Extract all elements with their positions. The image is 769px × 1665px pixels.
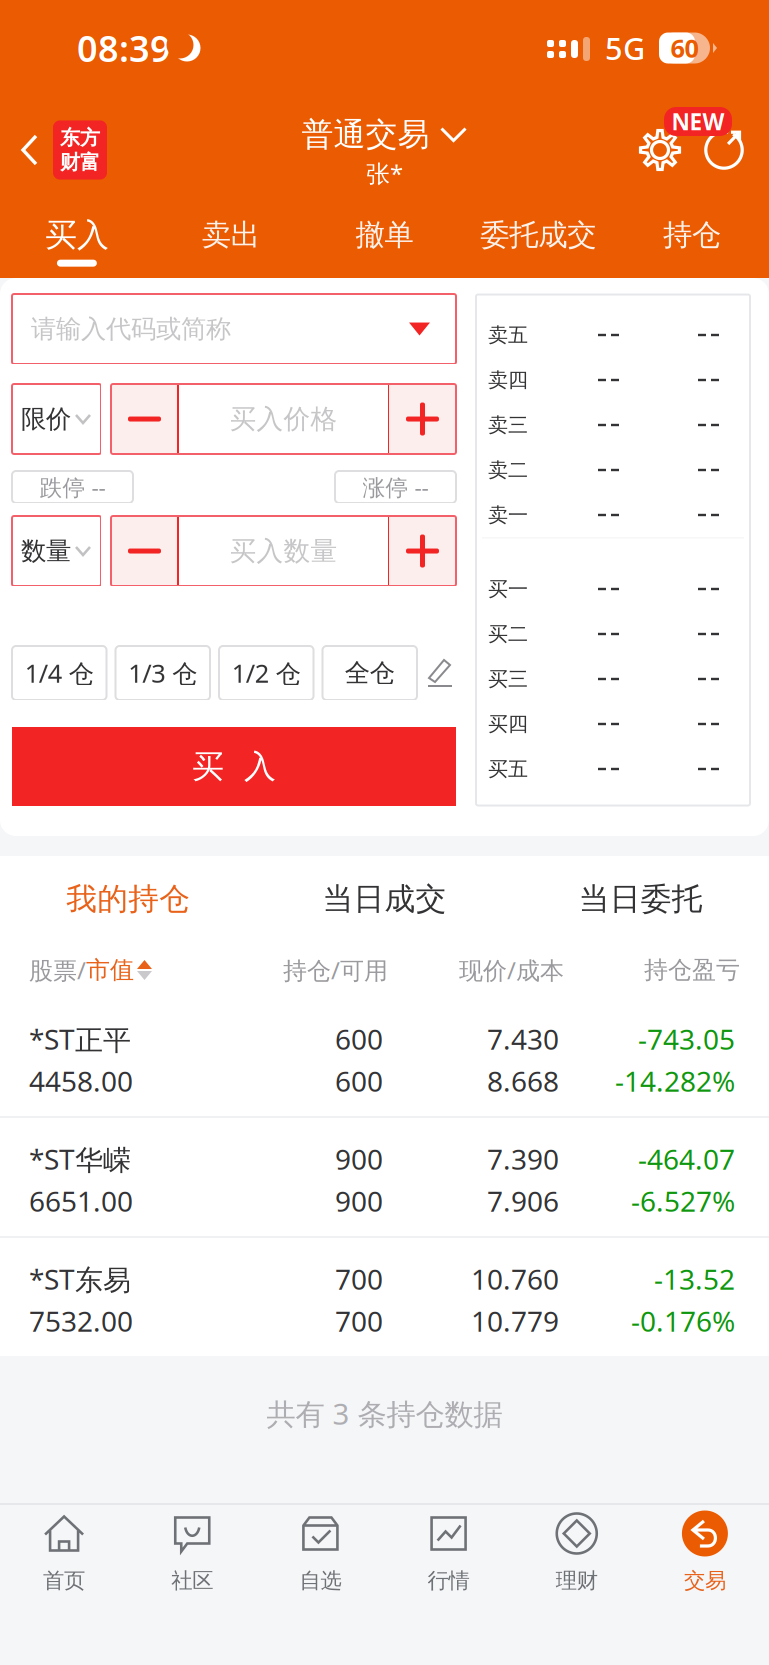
staticText: 股票/ bbox=[29, 954, 86, 986]
staticText: 交易 bbox=[684, 1567, 726, 1594]
button[interactable]: Settings bbox=[638, 128, 682, 172]
staticText: 600 bbox=[335, 1020, 383, 1058]
staticText: 普通交易 bbox=[301, 115, 429, 154]
staticText: 卖五 bbox=[488, 323, 528, 347]
staticText: 08:39 bbox=[77, 24, 171, 72]
button[interactable]: 1/3 仓 bbox=[115, 646, 210, 700]
button[interactable]: 全仓 bbox=[322, 646, 417, 700]
button[interactable]: 交易 bbox=[641, 1500, 769, 1627]
staticText: 700 bbox=[335, 1260, 383, 1298]
button[interactable]: 限价 bbox=[12, 384, 101, 454]
staticText: 900 bbox=[335, 1140, 383, 1178]
staticText: 买一 bbox=[488, 577, 528, 601]
button[interactable]: 跌停 -- bbox=[12, 471, 133, 503]
button[interactable]: Back bbox=[0, 96, 107, 204]
staticText: *ST华嵘 bbox=[29, 1140, 131, 1178]
staticText: 限价 bbox=[21, 403, 71, 434]
staticText: 请输入代码或简称 bbox=[31, 313, 231, 344]
button[interactable]: *ST正平 bbox=[0, 998, 769, 1116]
button[interactable]: Switch account bbox=[704, 128, 744, 172]
staticText: 8.668 bbox=[487, 1062, 559, 1100]
staticText: 卖三 bbox=[488, 413, 528, 437]
staticText: 市值 bbox=[86, 955, 134, 985]
staticText: *ST东易 bbox=[29, 1260, 131, 1298]
staticText: 买 入 bbox=[192, 747, 276, 786]
staticText: 卖四 bbox=[488, 368, 528, 392]
button[interactable]: Decrease bbox=[111, 384, 178, 454]
staticText: 持仓 bbox=[663, 217, 721, 253]
staticText: 1/3 仓 bbox=[128, 656, 197, 690]
button[interactable]: 卖出 bbox=[154, 204, 308, 278]
staticText: 当日委托 bbox=[579, 880, 703, 918]
button[interactable]: 我的持仓 bbox=[0, 859, 256, 939]
staticText: -6.527% bbox=[631, 1182, 735, 1220]
staticText: 当日成交 bbox=[322, 880, 446, 918]
staticText: 700 bbox=[335, 1302, 383, 1340]
staticText: 10.779 bbox=[471, 1302, 559, 1340]
button[interactable]: 持仓 bbox=[615, 204, 769, 278]
staticText: 行情 bbox=[428, 1567, 470, 1594]
button[interactable]: 委托成交 bbox=[461, 204, 615, 278]
staticText: 东方 bbox=[60, 125, 100, 150]
button[interactable]: 买 入 bbox=[12, 727, 456, 806]
staticText: 60 bbox=[670, 31, 698, 65]
button[interactable]: 当日委托 bbox=[513, 859, 769, 939]
staticText: 5G bbox=[605, 28, 645, 68]
staticText: 600 bbox=[335, 1062, 383, 1100]
button[interactable]: 请输入代码或简称 bbox=[12, 294, 456, 364]
button[interactable]: 1/4 仓 bbox=[12, 646, 106, 700]
staticText: 买五 bbox=[488, 757, 528, 781]
staticText: 900 bbox=[335, 1182, 383, 1220]
button[interactable]: 理财 bbox=[513, 1500, 641, 1627]
button[interactable]: Increase bbox=[389, 384, 456, 454]
button[interactable]: *ST华嵘 bbox=[0, 1118, 769, 1236]
staticText: 买入价格 bbox=[229, 403, 337, 435]
staticText: *ST正平 bbox=[29, 1020, 131, 1058]
staticText: -13.52 bbox=[654, 1260, 735, 1298]
staticText: 理财 bbox=[556, 1567, 598, 1594]
staticText: 7532.00 bbox=[29, 1302, 133, 1340]
staticText: 持仓/可用 bbox=[283, 954, 388, 986]
button[interactable]: 当日成交 bbox=[256, 859, 513, 939]
button[interactable]: 涨停 -- bbox=[335, 471, 456, 503]
button[interactable]: 行情 bbox=[384, 1500, 513, 1627]
button[interactable]: 首页 bbox=[0, 1500, 128, 1627]
button[interactable]: 买入数量 bbox=[178, 516, 389, 586]
staticText: 1/4 仓 bbox=[25, 656, 94, 690]
button[interactable]: Edit amounts bbox=[426, 657, 456, 689]
staticText: 全仓 bbox=[345, 657, 395, 688]
staticText: 委托成交 bbox=[480, 217, 596, 253]
button[interactable]: 1/2 仓 bbox=[219, 646, 313, 700]
staticText: 持仓盈亏 bbox=[644, 955, 740, 985]
button[interactable]: Decrease bbox=[111, 516, 178, 586]
button[interactable]: 撤单 bbox=[308, 204, 461, 278]
staticText: 自选 bbox=[299, 1567, 341, 1594]
staticText: 首页 bbox=[43, 1567, 85, 1594]
staticText: 买四 bbox=[488, 712, 528, 736]
staticText: 7.906 bbox=[487, 1182, 559, 1220]
button[interactable]: 自选 bbox=[256, 1500, 384, 1627]
staticText: 财富 bbox=[60, 150, 100, 175]
staticText: 卖一 bbox=[488, 503, 528, 527]
button[interactable]: 社区 bbox=[128, 1500, 256, 1627]
staticText: 数量 bbox=[21, 535, 71, 566]
staticText: 现价/成本 bbox=[459, 954, 564, 986]
staticText: -14.282% bbox=[615, 1062, 735, 1100]
staticText: NEW bbox=[671, 106, 724, 136]
staticText: -0.176% bbox=[631, 1302, 735, 1340]
button[interactable]: 数量 bbox=[12, 516, 101, 586]
button[interactable]: Increase bbox=[389, 516, 456, 586]
staticText: 7.390 bbox=[487, 1140, 559, 1178]
staticText: 共有 3 条持仓数据 bbox=[266, 1394, 502, 1433]
staticText: 卖二 bbox=[488, 458, 528, 482]
staticText: 社区 bbox=[171, 1567, 213, 1594]
staticText: 10.760 bbox=[471, 1260, 559, 1298]
button[interactable]: 买入 bbox=[0, 204, 154, 278]
button[interactable]: 买入价格 bbox=[178, 384, 389, 454]
staticText: 涨停 -- bbox=[362, 472, 428, 502]
staticText: 买二 bbox=[488, 622, 528, 646]
button[interactable]: *ST东易 bbox=[0, 1238, 769, 1356]
staticText: 买入数量 bbox=[229, 535, 337, 567]
staticText: 我的持仓 bbox=[66, 880, 190, 918]
staticText: 4458.00 bbox=[29, 1062, 133, 1100]
